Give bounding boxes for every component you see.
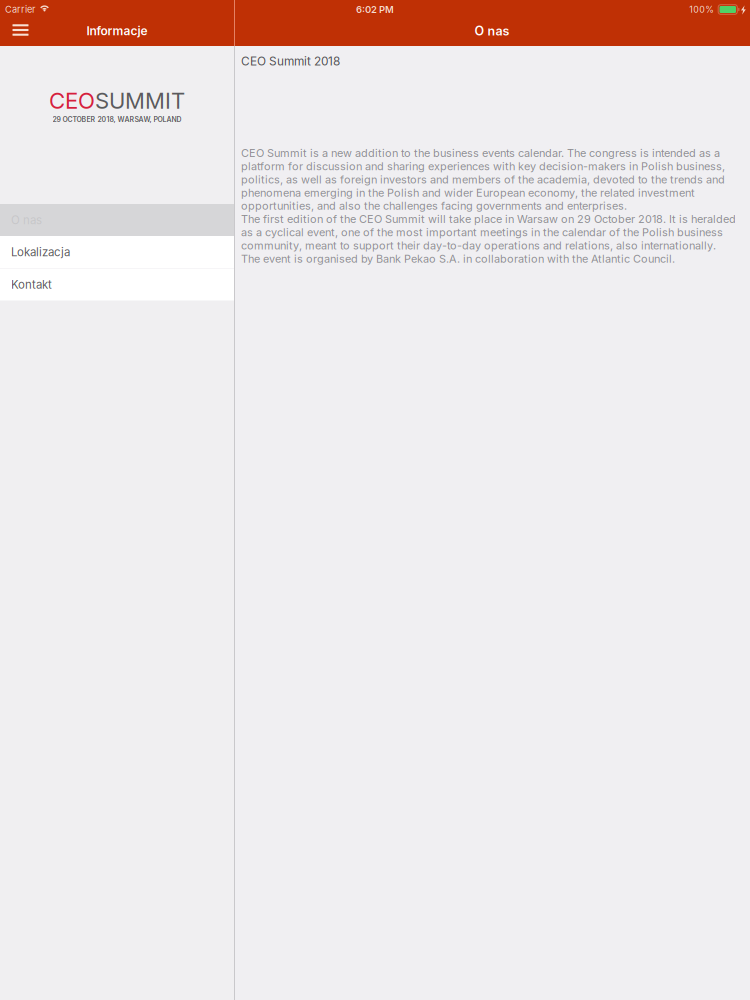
staticText: The event is organised by Bank Pekao S.A… [241,252,675,265]
staticText: 100% [689,4,714,15]
staticText: Lokalizacja [11,245,70,259]
staticText: SUMMIT [95,87,185,114]
staticText: CEO Summit 2018 [241,54,340,68]
staticText: Carrier [5,4,35,15]
button[interactable]: Kontakt [0,269,234,301]
button[interactable]: Lokalizacja [0,236,234,268]
staticText: 6:02 PM [356,4,394,15]
staticText: 29 OCTOBER 2018, WARSAW, POLAND [52,115,181,124]
button[interactable]: Show menu [0,20,41,46]
staticText: O nas [474,23,509,39]
staticText: Informacje [86,24,147,38]
staticText: The first edition of the CEO Summit will… [241,212,736,252]
staticText: Kontakt [11,278,52,292]
staticText: O nas [11,213,42,227]
staticText: CEO Summit is a new addition to the busi… [241,146,725,212]
staticText: CEO [49,87,95,114]
